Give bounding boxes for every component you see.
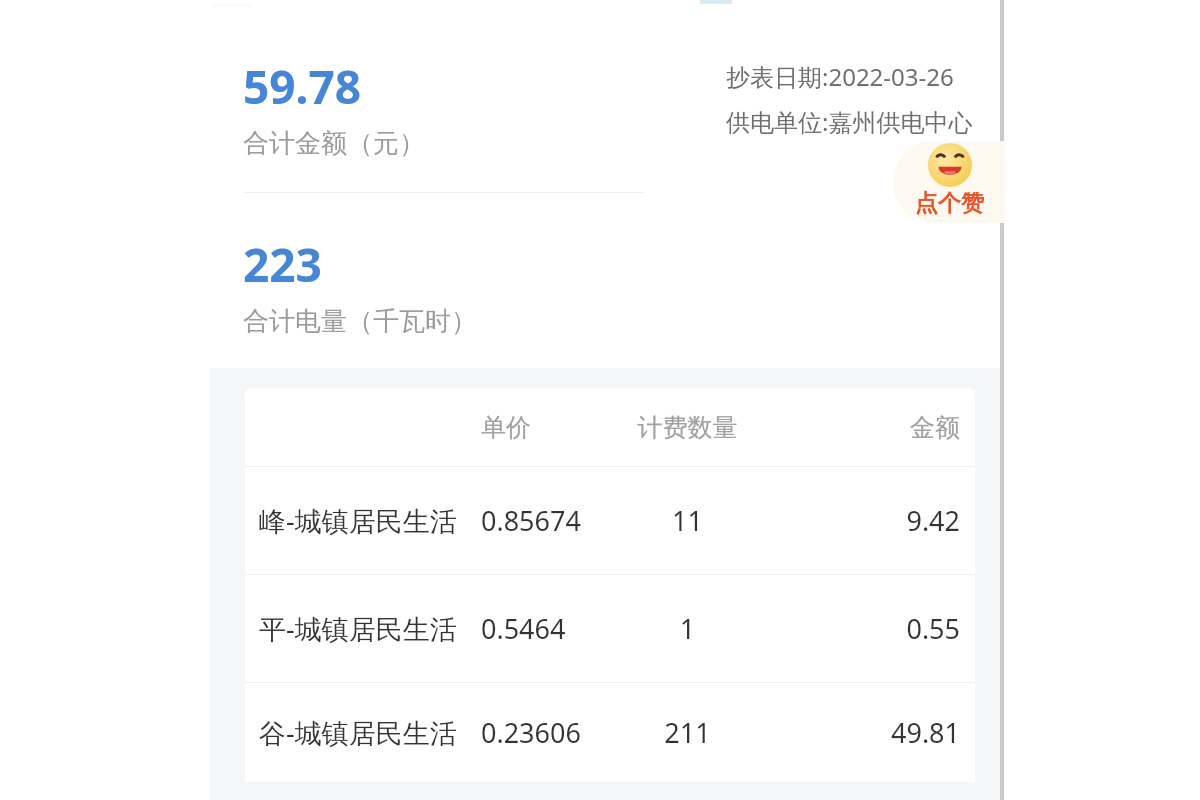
staticText: 0.85674 — [481, 502, 581, 539]
staticText: 211 — [615, 714, 760, 751]
staticText: 抄表日期:2022-03-26 — [726, 60, 954, 93]
staticText: 计费数量 — [615, 412, 760, 443]
staticText: 49.81 — [760, 714, 960, 751]
staticText: 谷-城镇居民生活 — [259, 714, 457, 751]
staticText: 59.78 — [243, 55, 362, 118]
staticText: 单价 — [481, 412, 531, 443]
button[interactable]: 峰-城镇居民生活 — [245, 467, 975, 574]
staticText: 平-城镇居民生活 — [259, 610, 457, 647]
staticText: 金额 — [760, 412, 960, 443]
staticText: 9.42 — [760, 502, 960, 539]
staticText: 合计电量（千瓦时） — [243, 305, 477, 338]
staticText: 合计金额（元） — [243, 127, 425, 160]
button[interactable]: 谷-城镇居民生活 — [245, 683, 975, 782]
staticText: 0.5464 — [481, 610, 566, 647]
staticText: 点个赞 — [915, 189, 984, 218]
button[interactable]: 点个赞 Like — [893, 141, 1005, 223]
staticText: 0.23606 — [481, 714, 581, 751]
staticText: 223 — [243, 233, 322, 296]
staticText: 峰-城镇居民生活 — [259, 502, 457, 539]
staticText: 11 — [615, 502, 760, 539]
button[interactable]: 平-城镇居民生活 — [245, 575, 975, 682]
staticText: 供电单位:嘉州供电中心 — [726, 105, 973, 138]
staticText: 0.55 — [760, 610, 960, 647]
staticText: 1 — [615, 610, 760, 647]
